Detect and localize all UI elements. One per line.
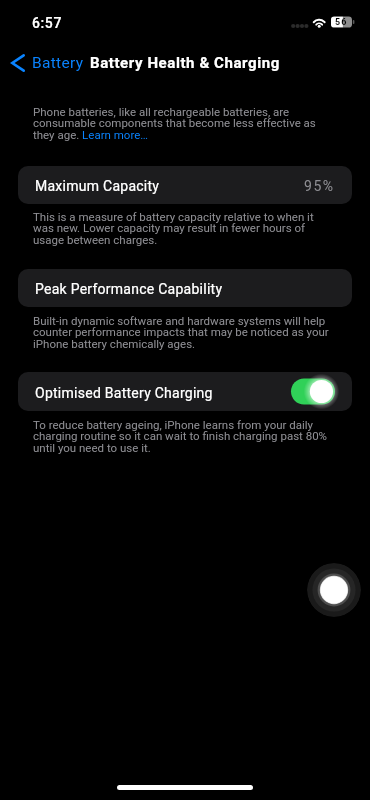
- staticText: Battery Health & Charging: [90, 54, 280, 72]
- staticText: Optimised Battery Charging: [35, 385, 213, 401]
- button[interactable]: Peak Performance Capability: [35, 269, 335, 307]
- staticText: 6:57: [32, 15, 62, 31]
- staticText: Peak Performance Capability: [35, 281, 223, 297]
- staticText: To reduce battery ageing, iPhone learns …: [33, 418, 331, 455]
- button[interactable]: AssistiveTouch: [307, 563, 361, 617]
- staticText: This is a measure of battery capacity re…: [33, 210, 331, 247]
- staticText: 95%: [304, 178, 335, 194]
- staticText: Maximum Capacity: [35, 178, 160, 194]
- button[interactable]: Optimised Battery Charging: [291, 378, 335, 405]
- button[interactable]: Maximum Capacity: [35, 166, 335, 204]
- button[interactable]: Battery: [11, 54, 84, 72]
- staticText: Phone batteries, like all rechargeable b…: [33, 105, 331, 142]
- staticText: Battery: [32, 54, 84, 72]
- staticText: Built-in dynamic software and hardware s…: [33, 314, 331, 351]
- staticText: 56: [335, 17, 348, 28]
